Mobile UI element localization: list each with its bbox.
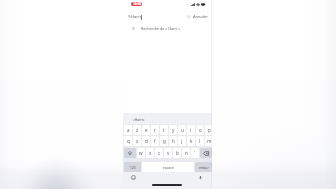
staticText: Harri xyxy=(131,14,141,20)
button[interactable]: c xyxy=(155,148,163,158)
staticText: u xyxy=(181,127,184,133)
button[interactable]: z xyxy=(133,125,141,135)
button[interactable]: f xyxy=(151,136,159,146)
button[interactable]: q xyxy=(124,136,132,146)
button[interactable]: retour xyxy=(195,162,212,172)
staticText: y xyxy=(172,127,175,133)
staticText: f xyxy=(154,138,156,144)
staticText: d xyxy=(145,138,148,144)
staticText: m xyxy=(207,138,212,144)
button[interactable]: l xyxy=(196,136,204,146)
staticText: espace xyxy=(163,165,174,169)
button[interactable]: e xyxy=(142,125,150,135)
button[interactable]: «Harri» xyxy=(133,117,145,122)
staticText: s xyxy=(136,138,139,144)
button[interactable]: m xyxy=(205,136,213,146)
staticText: n xyxy=(185,150,188,156)
staticText: t xyxy=(163,127,165,133)
button[interactable]: a xyxy=(124,125,132,135)
staticText: w xyxy=(139,150,143,156)
staticText: g xyxy=(163,138,166,144)
button[interactable]: ' xyxy=(191,148,199,158)
button[interactable]: x xyxy=(146,148,154,158)
button[interactable]: w xyxy=(137,148,145,158)
button[interactable]: Clear text xyxy=(187,15,190,18)
button[interactable]: o xyxy=(196,125,204,135)
button[interactable]: s xyxy=(133,136,141,146)
button[interactable]: Emoji keyboard xyxy=(131,175,136,180)
button[interactable]: p xyxy=(205,125,213,135)
staticText: i xyxy=(190,127,192,133)
staticText: x xyxy=(149,150,152,156)
staticText: z xyxy=(136,127,139,133)
button[interactable]: Harri xyxy=(123,12,212,21)
button[interactable]: Dictation xyxy=(198,175,203,180)
button[interactable]: t xyxy=(160,125,168,135)
staticText: 16:58 xyxy=(133,2,141,6)
staticText: r xyxy=(154,127,156,133)
staticText: Recherche de « Harri » xyxy=(141,26,180,31)
staticText: c xyxy=(158,150,161,156)
button[interactable]: i xyxy=(187,125,195,135)
button[interactable]: Shift xyxy=(124,148,136,158)
staticText: e xyxy=(145,127,148,133)
staticText: v xyxy=(167,150,170,156)
button[interactable]: espace xyxy=(142,162,194,172)
staticText: l xyxy=(199,138,201,144)
button[interactable]: 123 xyxy=(124,162,141,172)
button[interactable]: g xyxy=(160,136,168,146)
staticText: a xyxy=(127,127,130,133)
staticText: k xyxy=(190,138,193,144)
staticText: h xyxy=(172,138,175,144)
button[interactable]: r xyxy=(151,125,159,135)
button[interactable]: Recherche de « Harri » xyxy=(123,24,212,33)
button[interactable]: d xyxy=(142,136,150,146)
button[interactable]: u xyxy=(178,125,186,135)
staticText: o xyxy=(199,127,202,133)
button[interactable]: h xyxy=(169,136,177,146)
button[interactable]: y xyxy=(169,125,177,135)
button[interactable]: Backspace xyxy=(200,148,212,158)
button[interactable]: v xyxy=(164,148,172,158)
staticText: retour xyxy=(199,165,209,169)
staticText: 123 xyxy=(130,165,136,169)
button[interactable]: b xyxy=(173,148,181,158)
button[interactable]: j xyxy=(178,136,186,146)
staticText: ' xyxy=(194,150,196,156)
button[interactable]: n xyxy=(182,148,190,158)
button[interactable]: k xyxy=(187,136,195,146)
staticText: q xyxy=(127,138,130,144)
staticText: b xyxy=(176,150,179,156)
button[interactable]: Annuler xyxy=(193,14,208,19)
staticText: p xyxy=(208,127,211,133)
staticText: j xyxy=(181,138,183,144)
